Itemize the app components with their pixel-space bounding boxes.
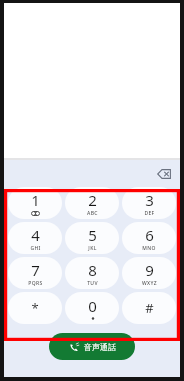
staticText: 5: [88, 225, 97, 245]
staticText: 9: [145, 260, 154, 280]
button[interactable]: *: [8, 292, 62, 324]
button[interactable]: 2: [65, 187, 119, 219]
staticText: 2: [88, 190, 97, 210]
staticText: WXYZ: [142, 280, 157, 287]
staticText: MNO: [142, 245, 156, 252]
staticText: 8: [88, 260, 97, 280]
staticText: *: [31, 299, 39, 317]
button[interactable]: 音声通話: [49, 333, 135, 360]
staticText: 4: [31, 225, 40, 245]
button[interactable]: 5: [65, 222, 119, 254]
staticText: GHI: [30, 245, 41, 252]
button[interactable]: 1: [8, 187, 62, 219]
button[interactable]: 8: [65, 257, 119, 289]
staticText: 3: [145, 190, 154, 210]
button[interactable]: 0: [65, 292, 119, 324]
button[interactable]: #: [122, 292, 176, 324]
button[interactable]: Backspace: [153, 163, 175, 185]
staticText: 音声通話: [84, 342, 116, 352]
staticText: DEF: [144, 210, 155, 217]
button[interactable]: 4: [8, 222, 62, 254]
staticText: #: [145, 299, 154, 317]
staticText: TUV: [87, 280, 98, 287]
staticText: 7: [31, 260, 40, 280]
staticText: JKL: [88, 245, 97, 252]
button[interactable]: 3: [122, 187, 176, 219]
staticText: PQRS: [28, 280, 43, 287]
button[interactable]: 6: [122, 222, 176, 254]
button[interactable]: 9: [122, 257, 176, 289]
button[interactable]: 7: [8, 257, 62, 289]
staticText: 6: [145, 225, 154, 245]
staticText: 1: [31, 190, 40, 210]
staticText: ABC: [87, 210, 98, 217]
staticText: 0: [88, 296, 97, 316]
